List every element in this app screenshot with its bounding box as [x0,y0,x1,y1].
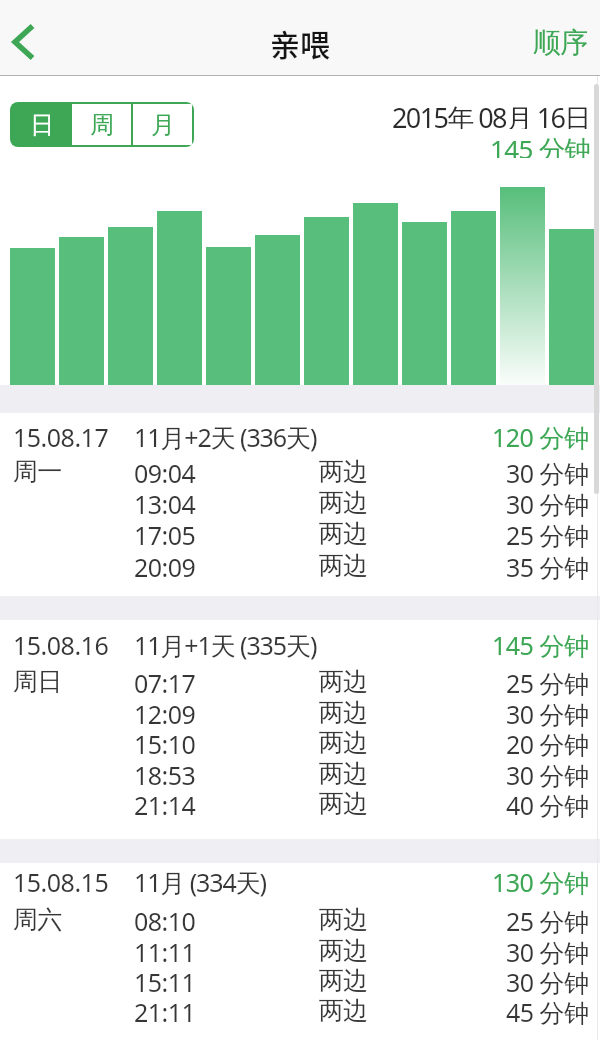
staticText: 周一 [13,456,62,486]
staticText: 两边 [319,965,368,995]
staticText: 30 分钟 [506,935,589,965]
button[interactable]: 周六 [0,904,600,934]
staticText: 两边 [319,935,368,965]
button[interactable]: 18:53 [0,758,600,788]
staticText: 两边 [319,904,368,934]
staticText: 12:09 [134,697,196,727]
button[interactable]: 顺序 [521,0,600,76]
staticText: 09:04 [134,456,196,486]
button[interactable]: 13:04 [0,487,600,517]
staticText: 20 分钟 [506,727,589,757]
staticText: 顺序 [533,25,588,60]
staticText: 35 分钟 [506,550,589,580]
staticText: 两边 [319,487,368,517]
staticText: 08:10 [134,904,196,934]
staticText: 周 [90,110,114,140]
staticText: 145 分钟 [490,131,590,158]
staticText: 18:53 [134,758,196,788]
staticText: 30 分钟 [506,758,589,788]
staticText: 周六 [13,904,62,934]
staticText: 20:09 [134,550,196,580]
staticText: 30 分钟 [506,697,589,727]
button[interactable]: 17:05 [0,518,600,548]
button[interactable]: 15.08.16 [0,623,600,667]
button[interactable]: 15.08.17 [0,415,600,459]
staticText: 25 分钟 [506,904,589,934]
staticText: 25 分钟 [506,666,589,696]
staticText: 11月+2天 (336天) [134,420,317,454]
staticText: 17:05 [134,518,196,548]
button[interactable]: 15:11 [0,965,600,995]
staticText: 11:11 [134,935,196,965]
button[interactable]: 周日 [0,666,600,696]
staticText: 30 分钟 [506,456,589,486]
staticText: 2015年 08月 16日 [392,99,590,129]
staticText: 两边 [319,788,368,818]
staticText: 120 分钟 [492,420,589,454]
button[interactable]: 周一 [0,456,600,486]
button[interactable]: 周 [72,104,131,145]
staticText: 15.08.17 [13,420,109,454]
staticText: 月 [151,110,175,140]
staticText: 145 分钟 [492,628,589,662]
staticText: 11月+1天 (335天) [134,628,317,662]
staticText: 30 分钟 [506,487,589,517]
staticText: 07:17 [134,666,196,696]
staticText: 亲喂 [270,21,330,64]
staticText: 15.08.15 [13,865,109,899]
staticText: 40 分钟 [506,788,589,818]
staticText: 15.08.16 [13,628,109,662]
staticText: 两边 [319,666,368,696]
button[interactable]: 15:10 [0,727,600,757]
staticText: 130 分钟 [492,865,589,899]
staticText: 两边 [319,697,368,727]
button[interactable]: 20:09 [0,550,600,580]
button[interactable] [0,14,50,70]
staticText: 15:10 [134,727,196,757]
staticText: 21:11 [134,995,196,1025]
button[interactable]: 21:11 [0,995,600,1025]
staticText: 25 分钟 [506,518,589,548]
staticText: 11月 (334天) [134,865,267,899]
button[interactable]: 日 [12,104,72,145]
button[interactable]: 21:14 [0,788,600,818]
staticText: 两边 [319,456,368,486]
staticText: 13:04 [134,487,196,517]
staticText: 日 [30,110,54,140]
staticText: 15:11 [134,965,196,995]
staticText: 30 分钟 [506,965,589,995]
staticText: 两边 [319,550,368,580]
button[interactable]: 月 [133,104,192,145]
staticText: 45 分钟 [506,995,589,1025]
button[interactable]: 12:09 [0,697,600,727]
staticText: 21:14 [134,788,196,818]
staticText: 周日 [13,666,62,696]
button[interactable]: 11:11 [0,935,600,965]
staticText: 两边 [319,518,368,548]
staticText: 两边 [319,727,368,757]
staticText: 两边 [319,758,368,788]
staticText: 两边 [319,995,368,1025]
button[interactable]: 15.08.15 [0,860,600,904]
